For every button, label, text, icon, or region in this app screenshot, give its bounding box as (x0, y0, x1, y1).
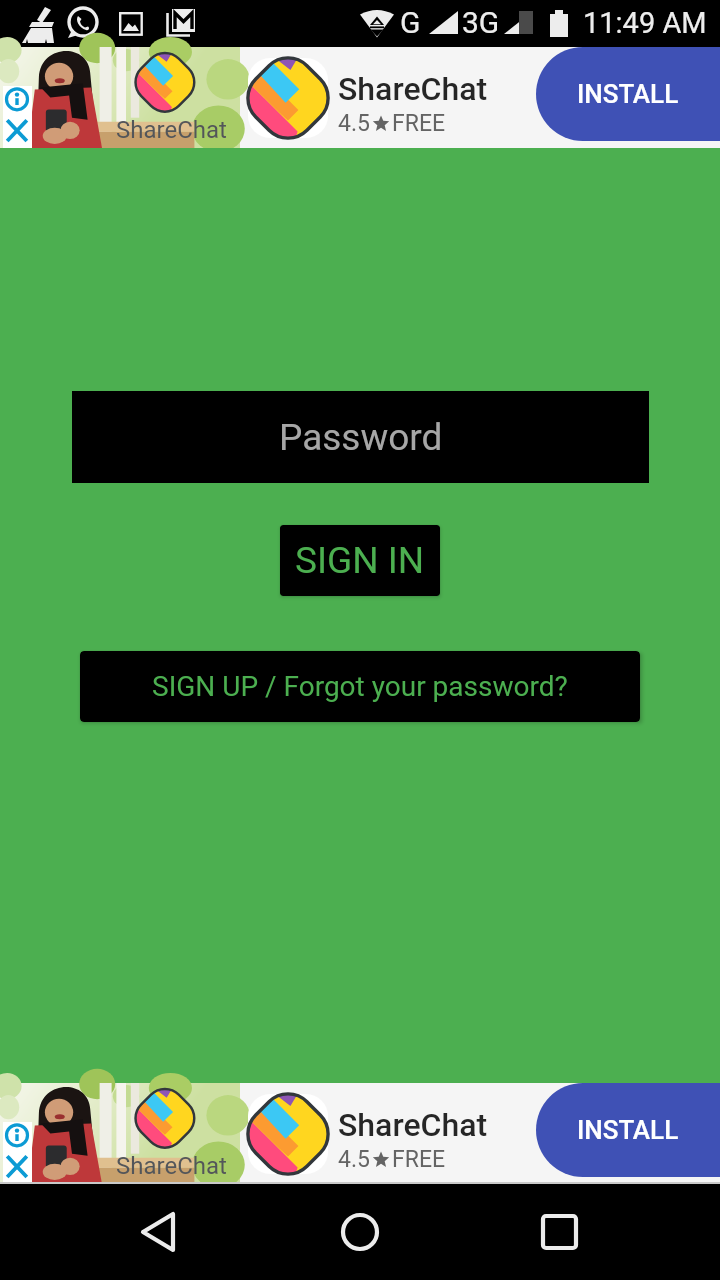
button[interactable]: SIGN UP / Forgot your password? (80, 651, 640, 722)
staticText: ShareChat (338, 70, 488, 108)
staticText: 4.5 (338, 110, 370, 137)
button[interactable]: INSTALL (536, 1083, 720, 1177)
staticText: FREE (392, 110, 446, 137)
staticText: ShareChat (116, 116, 227, 144)
staticText: ShareChat (116, 1152, 227, 1180)
staticText: SIGN UP / Forgot your password? (152, 670, 568, 703)
staticText: SIGN IN (295, 539, 425, 582)
staticText: 11:49 AM (583, 6, 707, 40)
button[interactable]: Home (310, 1184, 410, 1280)
staticText: G (400, 5, 421, 40)
staticText: 3G (462, 5, 500, 40)
button[interactable]: Recent apps (510, 1184, 610, 1280)
staticText: Password (279, 416, 443, 459)
staticText: FREE (392, 1146, 446, 1173)
staticText: INSTALL (577, 1115, 679, 1145)
staticText: 4.5 (338, 1146, 370, 1173)
button[interactable]: Back (110, 1184, 210, 1280)
button[interactable]: INSTALL (536, 47, 720, 141)
staticText: ShareChat (338, 1106, 488, 1144)
button[interactable]: SIGN IN (280, 525, 440, 596)
button[interactable]: Password (72, 391, 649, 483)
staticText: INSTALL (577, 79, 679, 109)
